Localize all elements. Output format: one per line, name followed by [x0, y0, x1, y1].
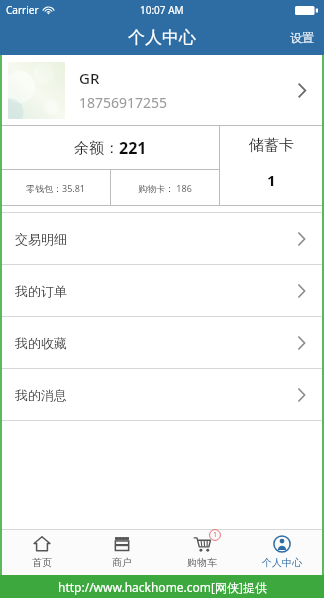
- staticText: 首页: [32, 556, 52, 569]
- staticText: 1: [213, 530, 218, 540]
- staticText: 储蓄卡: [249, 136, 294, 155]
- staticText: 我的消息: [15, 387, 67, 403]
- staticText: 221: [119, 137, 147, 159]
- staticText: 个人中心: [262, 556, 302, 569]
- button[interactable]: Cart: [162, 530, 242, 575]
- button[interactable]: GR: [2, 55, 322, 125]
- staticText: GR: [79, 68, 100, 88]
- staticText: 我的订单: [15, 283, 67, 299]
- button[interactable]: 交易明细: [2, 213, 322, 264]
- staticText: 设置: [290, 30, 314, 45]
- staticText: 10:07 AM: [140, 3, 184, 17]
- staticText: 交易明细: [15, 231, 67, 247]
- button[interactable]: 我的消息: [2, 369, 322, 420]
- button[interactable]: 储蓄卡: [220, 126, 322, 205]
- staticText: 购物车: [187, 556, 217, 569]
- button[interactable]: 购物卡： 186: [111, 170, 219, 205]
- button[interactable]: 设置: [280, 23, 324, 52]
- staticText: 18756917255: [79, 93, 168, 112]
- staticText: 我的收藏: [15, 335, 67, 351]
- button[interactable]: Home: [2, 530, 82, 575]
- button[interactable]: 零钱包：35.81: [2, 170, 110, 205]
- staticText: Carrier: [6, 3, 39, 17]
- button[interactable]: 余额：: [2, 126, 219, 169]
- staticText: 1: [267, 170, 276, 190]
- button[interactable]: Merchants: [82, 530, 162, 575]
- staticText: 商户: [112, 556, 132, 569]
- staticText: 购物卡： 186: [138, 182, 192, 194]
- staticText: http://www.hackhome.com[网侠]提供: [58, 579, 267, 595]
- button[interactable]: 我的收藏: [2, 317, 322, 368]
- staticText: 个人中心: [128, 27, 196, 48]
- staticText: 零钱包：35.81: [26, 182, 86, 194]
- staticText: 余额：: [74, 139, 119, 158]
- button[interactable]: Profile: [242, 530, 322, 575]
- button[interactable]: 我的订单: [2, 265, 322, 316]
